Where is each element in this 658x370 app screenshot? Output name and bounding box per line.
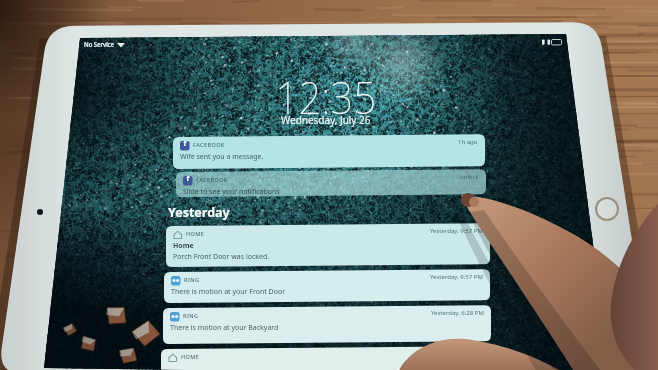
button[interactable]: Facebook notification: [176, 172, 486, 197]
button[interactable]: Home: Porch Front Door was locked. Yeste…: [166, 226, 490, 267]
button[interactable]: Facebook: Wife sent you a message. 1h ag…: [173, 137, 485, 169]
button[interactable]: Home notification, Yesterday: [161, 349, 489, 370]
button[interactable]: Ring: There is motion at your Front Door…: [164, 272, 490, 303]
button[interactable]: Home button: [596, 198, 619, 221]
button[interactable]: Facebook: Wife sent you a message. 1h ag…: [0, 0, 658, 370]
button[interactable]: Ring: There is motion at your Backyard. …: [163, 308, 491, 344]
